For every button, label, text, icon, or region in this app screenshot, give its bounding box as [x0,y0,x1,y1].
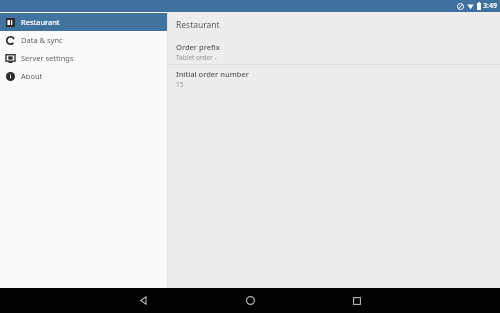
staticText: Server settings [21,53,74,63]
button[interactable]: Restaurant [0,13,167,31]
button[interactable]: Home [230,288,270,313]
staticText: Order prefix [176,42,220,52]
staticText: Data & sync [21,35,63,45]
button[interactable]: About [0,67,167,85]
button[interactable]: Server settings [0,49,167,67]
button[interactable]: Recent apps [337,288,377,313]
staticText: Initial order number [176,69,249,79]
staticText: Restaurant [176,19,220,31]
staticText: Tablet order - [176,53,217,62]
button[interactable]: Order prefix [168,38,500,64]
button[interactable]: Data & sync [0,31,167,49]
staticText: Restaurant [21,17,60,27]
button[interactable]: Back [123,288,163,313]
staticText: 15 [176,80,184,89]
staticText: 3:49 [483,1,497,11]
button[interactable]: Initial order number [168,65,500,91]
staticText: About [21,71,43,81]
